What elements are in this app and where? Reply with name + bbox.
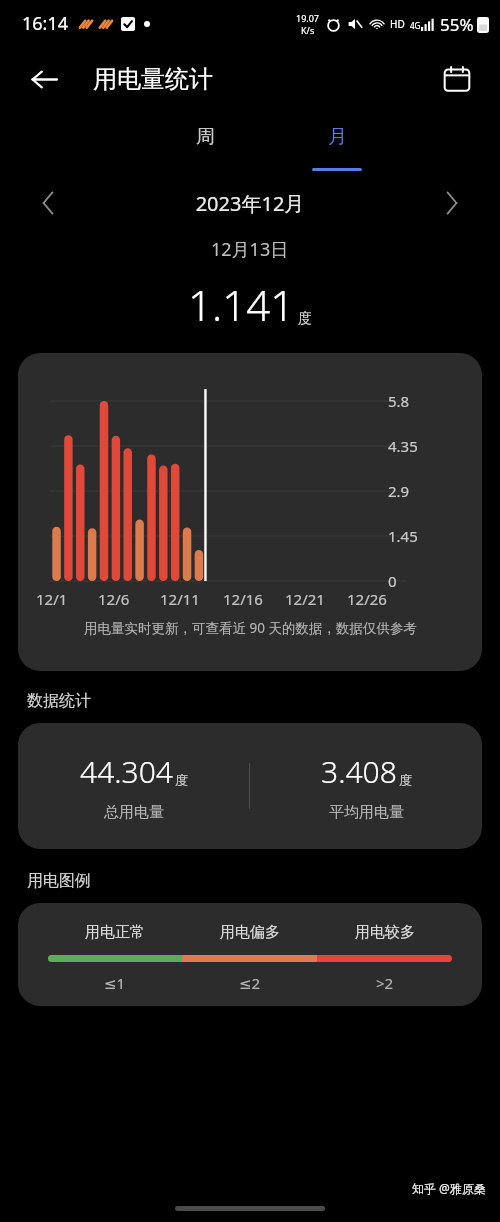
staticText: 知乎 @雅原桑 — [412, 1180, 486, 1196]
staticText: 44.304 — [80, 751, 173, 792]
staticText: 12/16 — [223, 589, 263, 609]
button[interactable]: 月 — [310, 125, 364, 171]
staticText: 度 — [399, 772, 412, 788]
staticText: 12/1 — [36, 589, 68, 609]
staticText: 3.408 — [321, 751, 397, 792]
staticText: 5.8 — [388, 391, 410, 411]
staticText: 数据统计 — [27, 691, 91, 711]
staticText: 总用电量 — [104, 803, 164, 822]
staticText: 55% — [440, 13, 474, 36]
staticText: 12/21 — [285, 589, 325, 609]
staticText: 2.9 — [388, 481, 410, 501]
button[interactable]: Back — [21, 56, 67, 102]
staticText: >2 — [376, 973, 394, 993]
staticText: 16:14 — [22, 11, 69, 36]
staticText: 月 — [328, 125, 347, 149]
staticText: 4G — [410, 20, 421, 31]
staticText: 平均用电量 — [329, 803, 404, 822]
staticText: HD — [390, 17, 405, 31]
button[interactable]: Previous month — [28, 183, 68, 223]
staticText: 12/26 — [347, 589, 387, 609]
staticText: 度 — [175, 772, 188, 788]
staticText: K/s — [301, 24, 315, 36]
staticText: 用电量统计 — [93, 64, 213, 94]
staticText: 用电较多 — [355, 923, 415, 942]
staticText: 4.35 — [388, 436, 418, 456]
staticText: 12/6 — [98, 589, 130, 609]
staticText: 1.45 — [388, 526, 418, 546]
staticText: ≤2 — [239, 973, 261, 993]
staticText: 2023年12月 — [68, 190, 432, 217]
staticText: 12月13日 — [211, 237, 289, 262]
staticText: 用电正常 — [85, 923, 145, 942]
staticText: 度 — [298, 310, 312, 328]
staticText: 12/11 — [160, 589, 200, 609]
button[interactable]: Next month — [432, 183, 472, 223]
button[interactable]: 周 — [178, 125, 232, 171]
staticText: 1.141 — [188, 276, 295, 333]
staticText: 用电量实时更新，可查看近 90 天的数据，数据仅供参考 — [84, 619, 417, 637]
staticText: ≤1 — [104, 973, 126, 993]
button[interactable]: Calendar — [434, 56, 480, 102]
staticText: 用电偏多 — [220, 923, 280, 942]
staticText: 0 — [388, 571, 397, 591]
staticText: 用电图例 — [27, 871, 91, 891]
staticText: 周 — [196, 125, 215, 149]
staticText: 19.07 — [296, 12, 320, 24]
